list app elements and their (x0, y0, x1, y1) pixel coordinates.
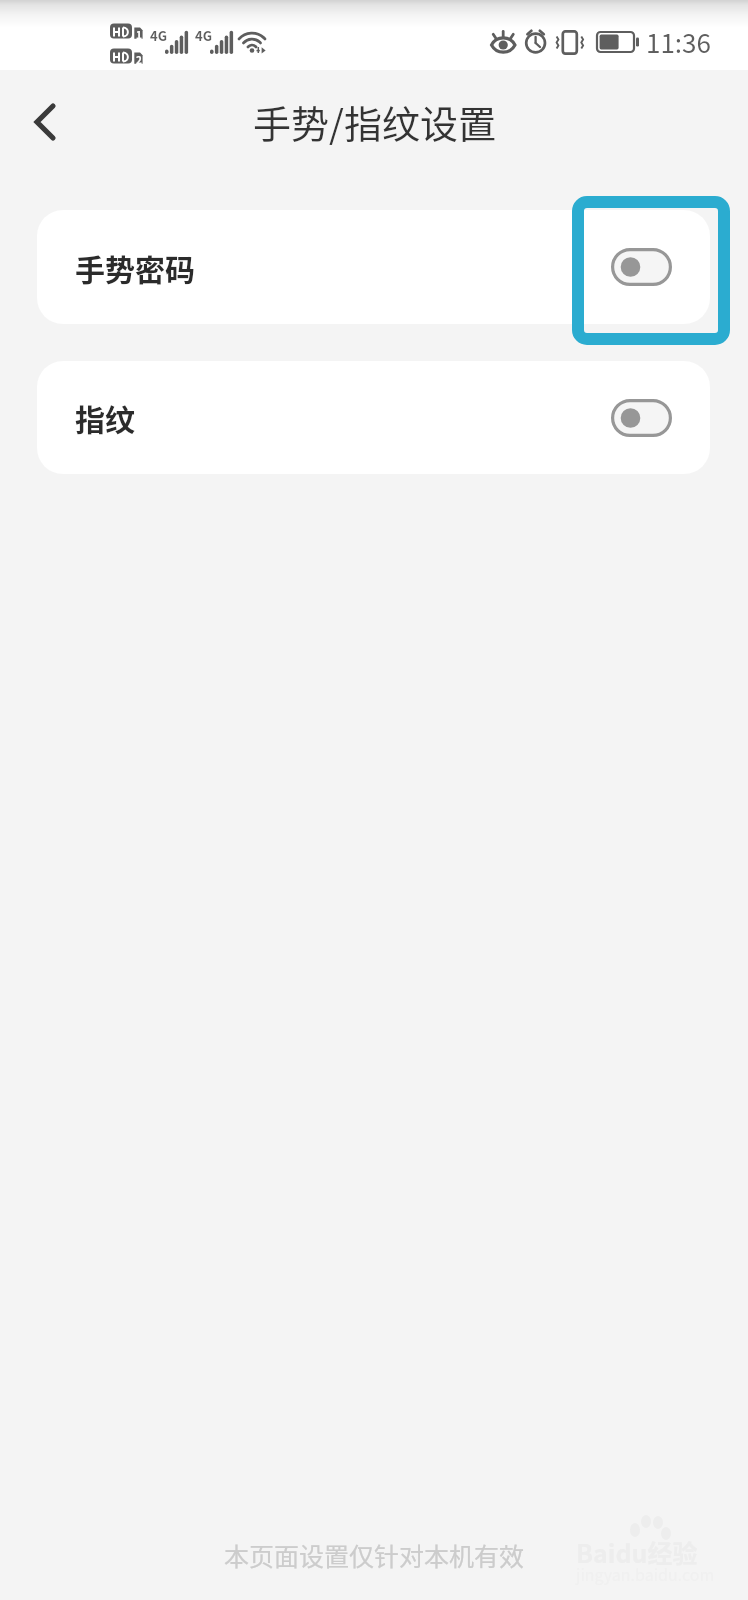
staticText: 11:36 (646, 23, 711, 61)
button[interactable]: 手势密码 (37, 210, 710, 324)
button[interactable]: Toggle off (611, 248, 672, 286)
staticText: 1 (136, 27, 142, 41)
staticText: 4G (195, 26, 212, 45)
staticText: 本页面设置仅针对本机有效 (0, 1537, 748, 1573)
button[interactable]: Toggle off (611, 399, 672, 437)
staticText: 手势密码 (75, 246, 195, 289)
button[interactable]: Back (10, 87, 80, 157)
staticText: Baidu经验 (576, 1534, 698, 1570)
staticText: 2 (136, 52, 142, 66)
button[interactable]: 指纹 (37, 361, 710, 474)
staticText: 手势/指纹设置 (253, 94, 496, 149)
staticText: 指纹 (75, 396, 135, 439)
staticText: 4G (150, 26, 167, 45)
